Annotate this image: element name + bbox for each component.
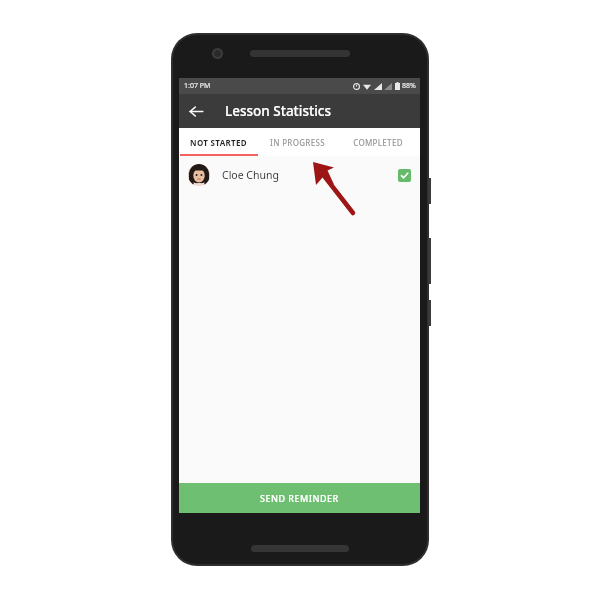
button[interactable]: Selected — [398, 169, 411, 182]
button[interactable]: COMPLETED — [336, 128, 420, 156]
staticText: Cloe Chung — [222, 168, 398, 182]
button[interactable]: SEND REMINDER — [179, 483, 420, 513]
staticText: NOT STARTED — [190, 137, 247, 148]
button[interactable]: IN PROGRESS — [258, 128, 336, 156]
staticText: COMPLETED — [353, 137, 403, 148]
button[interactable]: Cloe Chung — [179, 156, 420, 194]
staticText: 88% — [402, 81, 416, 91]
button[interactable]: NOT STARTED — [179, 128, 258, 156]
staticText: SEND REMINDER — [260, 492, 339, 504]
staticText: IN PROGRESS — [270, 137, 325, 148]
staticText: 1:07 PM — [184, 81, 211, 91]
staticText: Lesson Statistics — [225, 102, 332, 120]
button[interactable]: Back — [179, 94, 213, 128]
